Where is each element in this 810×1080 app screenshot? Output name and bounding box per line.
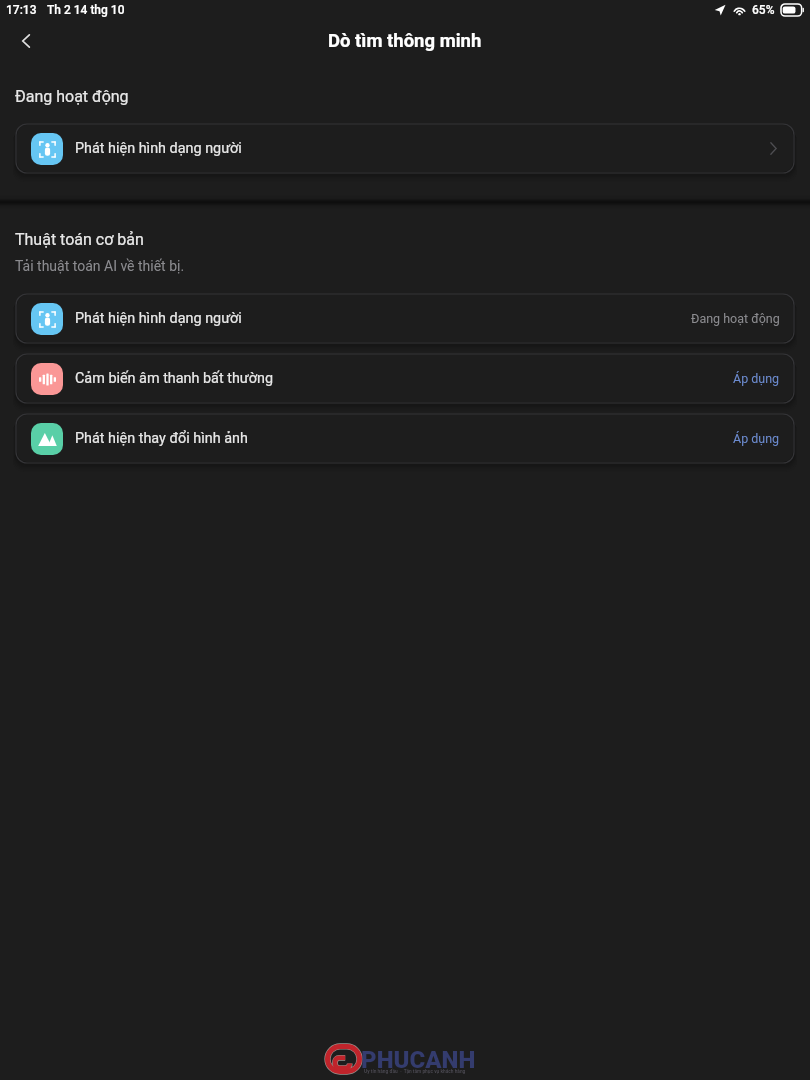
button[interactable]: Phát hiện thay đổi hình ảnh [16,414,794,467]
button[interactable]: Cảm biến âm thanh bất thường [16,354,794,407]
staticText: PHUCANH [361,1046,476,1074]
staticText: 65% [752,3,775,17]
staticText: Áp dụng [733,431,780,446]
staticText: Cảm biến âm thanh bất thường [75,370,274,387]
button[interactable]: Back [4,21,46,60]
staticText: Thuật toán cơ bản [15,230,144,249]
staticText: 17:13 [6,3,37,17]
staticText: Uy tín hàng đầu · Tận tâm phục vụ khách … [364,1069,466,1075]
staticText: Đang hoạt động [15,87,129,106]
staticText: Phát hiện thay đổi hình ảnh [75,430,248,447]
staticText: Tải thuật toán AI về thiết bị. [15,258,185,274]
staticText: Đang hoạt động [691,311,780,326]
button[interactable]: Phát hiện hình dạng người [16,124,794,177]
staticText: Th 2 14 thg 10 [47,3,125,17]
button[interactable]: Phát hiện hình dạng người [16,294,794,347]
staticText: Phát hiện hình dạng người [75,140,242,157]
staticText: Dò tìm thông minh [328,30,482,52]
staticText: Phát hiện hình dạng người [75,310,242,327]
staticText: Áp dụng [733,371,780,386]
